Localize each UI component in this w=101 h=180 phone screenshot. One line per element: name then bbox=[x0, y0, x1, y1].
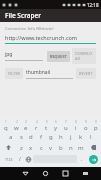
staticText: m bbox=[78, 144, 84, 152]
button[interactable]: 6 bbox=[51, 120, 61, 131]
staticText: w bbox=[14, 124, 19, 131]
staticText: 2 bbox=[16, 120, 18, 124]
button[interactable]: Go bbox=[89, 155, 98, 164]
staticText: e bbox=[24, 124, 28, 131]
staticText: h bbox=[59, 133, 63, 141]
button[interactable]: Recent apps bbox=[55, 167, 75, 180]
staticText: n bbox=[69, 144, 73, 152]
staticText: k bbox=[79, 133, 83, 141]
button[interactable]: a bbox=[6, 131, 16, 142]
button[interactable]: jpg bbox=[5, 51, 43, 61]
staticText: Connection Info (Website) bbox=[5, 26, 54, 31]
button[interactable]: 9 bbox=[81, 120, 91, 131]
button[interactable]: . bbox=[77, 153, 86, 165]
button[interactable]: Back bbox=[15, 167, 35, 180]
staticText: d bbox=[29, 133, 33, 141]
staticText: 1 bbox=[5, 120, 7, 124]
staticText: i bbox=[75, 124, 77, 131]
button[interactable]: Home bbox=[35, 167, 55, 180]
button[interactable]: c bbox=[36, 142, 46, 153]
staticText: s bbox=[20, 133, 23, 141]
staticText: g bbox=[49, 133, 53, 141]
staticText: 3 bbox=[25, 120, 27, 124]
button[interactable]: s bbox=[16, 131, 26, 142]
button[interactable]: b bbox=[56, 142, 66, 153]
button[interactable]: 4 bbox=[31, 120, 41, 131]
button[interactable]: n bbox=[66, 142, 76, 153]
button[interactable]: http://www.techcrunch.com bbox=[5, 34, 96, 44]
staticText: u bbox=[64, 124, 68, 131]
staticText: 8 bbox=[75, 120, 77, 124]
button[interactable]: v bbox=[46, 142, 56, 153]
button[interactable]: 7 bbox=[61, 120, 71, 131]
button[interactable]: l bbox=[86, 131, 96, 142]
button[interactable]: h bbox=[56, 131, 66, 142]
staticText: l bbox=[90, 133, 92, 141]
button[interactable]: / bbox=[16, 153, 24, 165]
staticText: a bbox=[9, 133, 13, 141]
staticText: 7 bbox=[65, 120, 67, 124]
button[interactable]: Backspace bbox=[86, 142, 101, 153]
staticText: 5 bbox=[46, 120, 48, 124]
staticText: v bbox=[49, 144, 53, 152]
button[interactable]: f bbox=[36, 131, 46, 142]
button[interactable]: 2 bbox=[11, 120, 21, 131]
button[interactable]: ?123 bbox=[1, 153, 16, 165]
staticText: j bbox=[70, 133, 72, 141]
staticText: DOWNLOAD bbox=[75, 51, 93, 61]
button[interactable]: Switch keyboard bbox=[75, 167, 95, 180]
staticText: http://www.techcrunch.com bbox=[5, 34, 78, 41]
staticText: 9 bbox=[85, 120, 87, 124]
button[interactable]: 0 bbox=[91, 120, 101, 131]
button[interactable]: 1 bbox=[0, 120, 11, 131]
staticText: z bbox=[20, 144, 23, 152]
staticText: 0 bbox=[95, 120, 97, 124]
staticText: . bbox=[81, 156, 83, 163]
button[interactable]: k bbox=[76, 131, 86, 142]
button[interactable]: Change language bbox=[24, 153, 33, 165]
staticText: File Scraper bbox=[5, 11, 41, 20]
staticText: f bbox=[40, 133, 43, 141]
staticText: r bbox=[35, 124, 38, 131]
button[interactable]: m bbox=[76, 142, 86, 153]
staticText: t bbox=[45, 124, 48, 131]
staticText: REQUEST bbox=[50, 54, 67, 59]
staticText: thumbnail bbox=[26, 69, 51, 76]
button[interactable]: Shift bbox=[0, 142, 16, 153]
staticText: p bbox=[94, 124, 98, 131]
staticText: 6 bbox=[55, 120, 57, 124]
staticText: 12:18 bbox=[87, 2, 99, 8]
button[interactable]: 8 bbox=[71, 120, 81, 131]
staticText: o bbox=[84, 124, 88, 131]
button[interactable]: j bbox=[66, 131, 76, 142]
staticText: jpg bbox=[5, 51, 13, 58]
staticText: b bbox=[59, 144, 63, 152]
button[interactable]: x bbox=[26, 142, 36, 153]
staticText: y bbox=[54, 124, 58, 131]
button[interactable]: d bbox=[26, 131, 36, 142]
button[interactable]: thumbnail bbox=[26, 69, 73, 79]
staticText: x bbox=[29, 144, 33, 152]
button[interactable]: g bbox=[46, 131, 56, 142]
button[interactable]: REQUEST bbox=[47, 51, 70, 62]
staticText: FILTER bbox=[8, 71, 20, 76]
staticText: 4 bbox=[36, 120, 38, 124]
staticText: / bbox=[19, 156, 21, 163]
button[interactable]: 5 bbox=[41, 120, 51, 131]
button[interactable]: INVERT bbox=[76, 68, 96, 79]
staticText: q bbox=[4, 124, 8, 131]
staticText: INVERT bbox=[79, 71, 93, 76]
staticText: c bbox=[40, 144, 43, 152]
button[interactable]: z bbox=[16, 142, 26, 153]
staticText: ?123 bbox=[5, 157, 13, 162]
button[interactable]: 3 bbox=[21, 120, 31, 131]
button[interactable]: FILTER bbox=[5, 68, 23, 79]
button[interactable]: DOWNLOAD bbox=[72, 48, 96, 64]
